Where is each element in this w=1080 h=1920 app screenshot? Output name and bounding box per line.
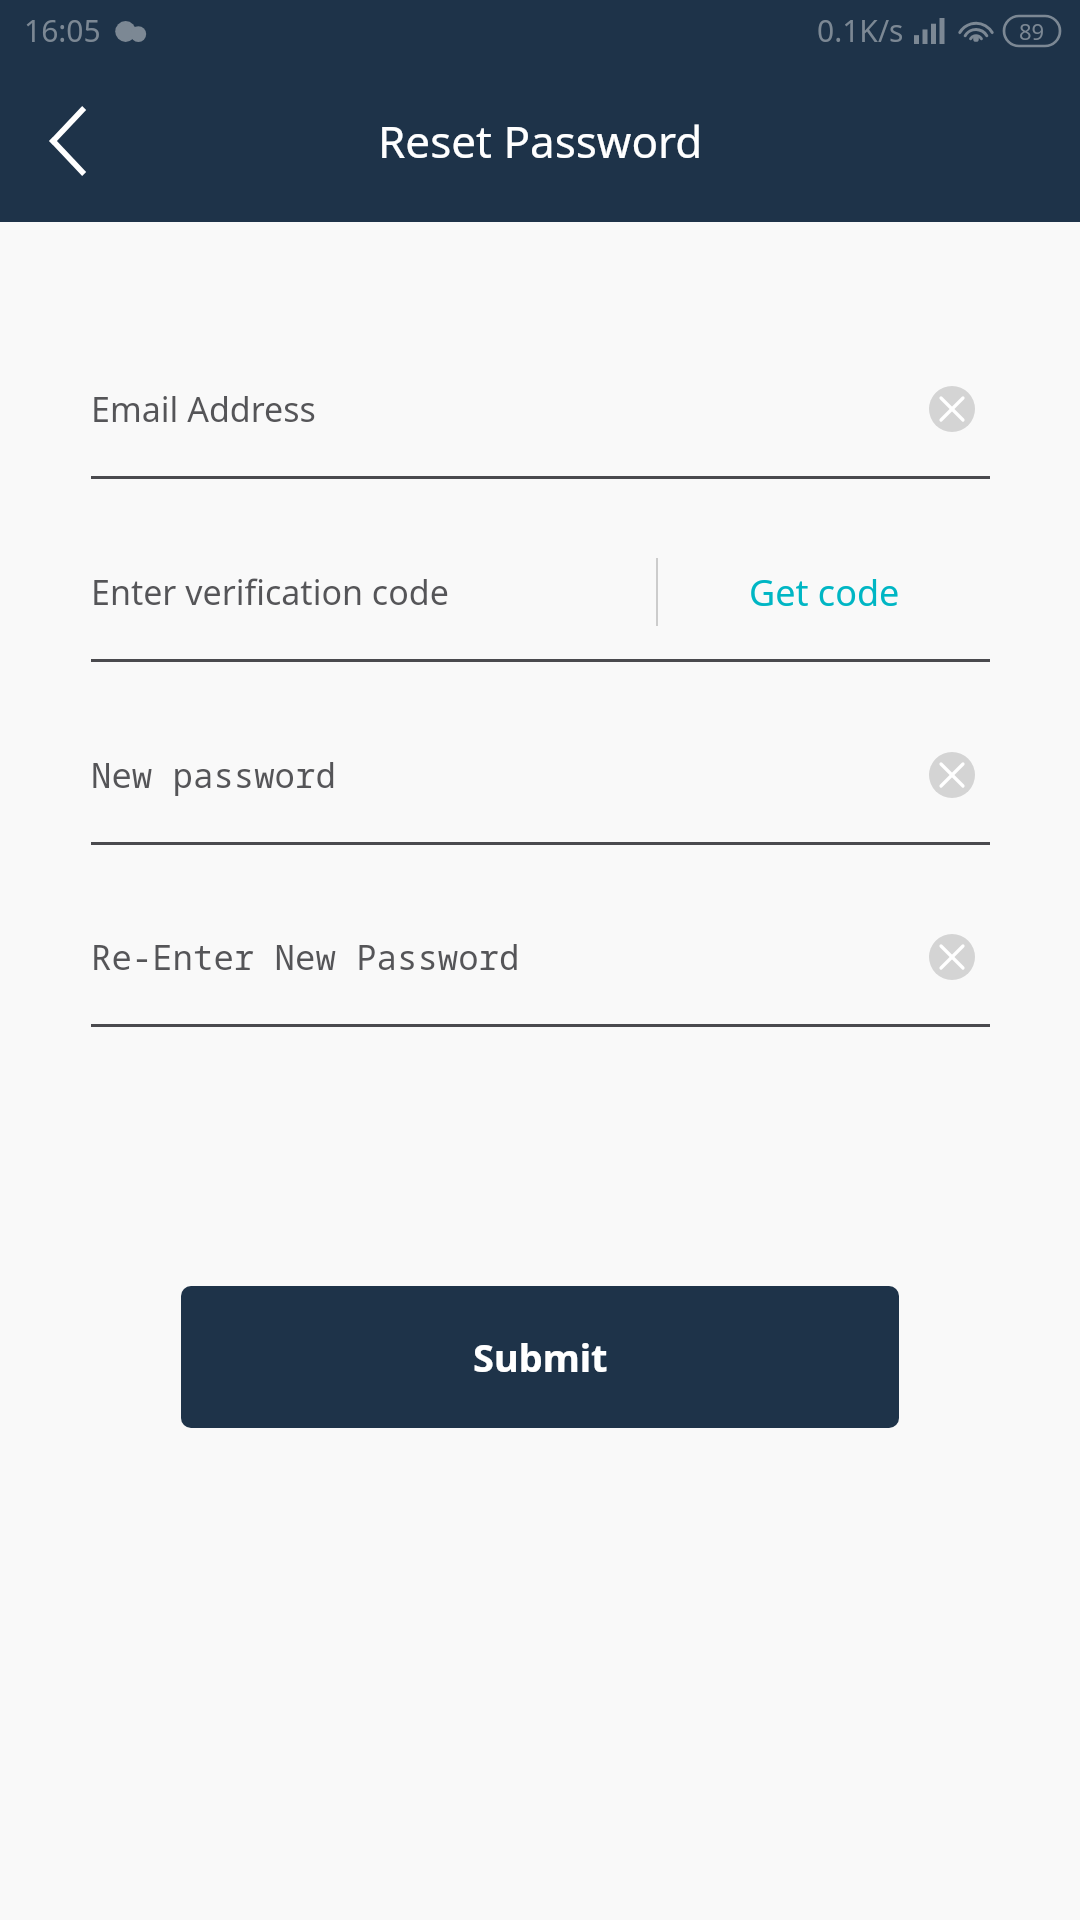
button[interactable]: New password <box>91 708 990 842</box>
button[interactable]: Re-Enter New Password <box>91 890 990 1024</box>
staticText: Enter verification code <box>91 569 449 615</box>
button[interactable]: Clear text <box>914 919 990 995</box>
staticText: 16:05 <box>24 10 101 51</box>
button[interactable]: Back <box>20 93 116 189</box>
staticText: Get code <box>749 568 900 617</box>
button[interactable]: Enter verification code <box>91 525 990 659</box>
staticText: New password <box>91 752 336 798</box>
staticText: Reset Password <box>378 111 703 171</box>
button[interactable]: Submit <box>181 1286 899 1428</box>
staticText: Re-Enter New Password <box>91 934 520 980</box>
staticText: 89 <box>1019 16 1045 46</box>
button[interactable]: Clear text <box>914 371 990 447</box>
button[interactable]: Get code <box>658 525 990 659</box>
staticText: Email Address <box>91 386 316 432</box>
button[interactable]: Email Address <box>91 342 990 476</box>
staticText: 0.1K/s <box>817 10 904 51</box>
staticText: Submit <box>473 1331 608 1383</box>
button[interactable]: Clear text <box>914 737 990 813</box>
